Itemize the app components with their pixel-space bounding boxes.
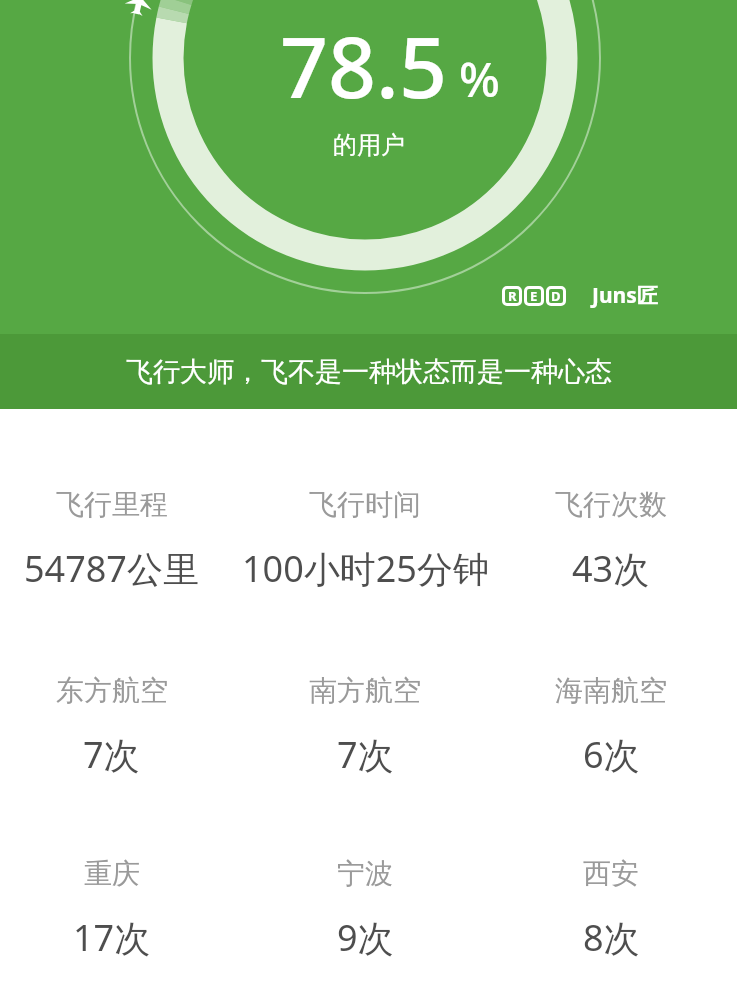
staticText: 南方航空 <box>309 673 421 708</box>
button[interactable]: 西安 <box>488 855 734 957</box>
button[interactable]: 南方航空 <box>242 672 488 774</box>
staticText: R <box>508 287 517 305</box>
staticText: 17次 <box>73 913 151 957</box>
button[interactable]: 重庆 <box>0 855 234 957</box>
staticText: 飞行时间 <box>309 487 421 522</box>
staticText: Juns匠 <box>592 281 658 310</box>
button[interactable]: R <box>502 281 658 310</box>
staticText: 宁波 <box>337 856 393 891</box>
staticText: 西安 <box>583 856 639 891</box>
button[interactable]: 飞行次数 <box>488 486 734 588</box>
staticText: 6次 <box>583 730 640 774</box>
staticText: D <box>551 287 561 305</box>
staticText: 飞行大师，飞不是一种状态而是一种心态 <box>126 355 612 389</box>
staticText: 东方航空 <box>56 673 168 708</box>
staticText: 8次 <box>583 913 640 957</box>
staticText: 7次 <box>83 730 140 774</box>
button[interactable]: 宁波 <box>242 855 488 957</box>
button[interactable]: 飞行时间 <box>242 486 488 588</box>
staticText: 飞行里程 <box>56 487 168 522</box>
staticText: 54787公里 <box>24 544 199 588</box>
button[interactable]: 海南航空 <box>488 672 734 774</box>
staticText: 100小时25分钟 <box>242 544 489 588</box>
staticText: 海南航空 <box>555 673 667 708</box>
button[interactable]: 飞行大师，飞不是一种状态而是一种心态 <box>0 334 737 409</box>
staticText: 重庆 <box>84 856 140 891</box>
button[interactable]: 东方航空 <box>0 672 234 774</box>
staticText: E <box>530 287 538 305</box>
button[interactable]: 飞行里程 <box>0 486 234 588</box>
staticText: 7次 <box>337 730 394 774</box>
staticText: 飞行次数 <box>555 487 667 522</box>
staticText: % <box>459 46 500 111</box>
staticText: 43次 <box>572 544 650 588</box>
staticText: 9次 <box>337 913 394 957</box>
staticText: 的用户 <box>333 130 405 160</box>
staticText: 78.5 <box>280 8 447 122</box>
